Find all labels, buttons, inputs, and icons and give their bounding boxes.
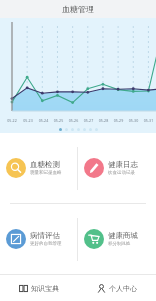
staticText: 05-30 [126, 118, 141, 123]
button[interactable]: 健康日志 [78, 133, 156, 203]
staticText: 更好的自我管理 [30, 241, 62, 247]
staticText: 05-29 [111, 118, 126, 123]
button[interactable]: Profile [78, 275, 156, 301]
staticText: 05-28 [96, 118, 111, 123]
staticText: 05-26 [66, 118, 81, 123]
staticText: 血糖管理 [62, 4, 94, 14]
staticText: 05-25 [51, 118, 66, 123]
staticText: 05-22 [4, 118, 20, 123]
staticText: 测量和记录血糖 [30, 170, 62, 176]
staticText: 积分制兑换 [108, 241, 131, 247]
staticText: 05-24 [36, 118, 51, 123]
button[interactable]: Knowledge [0, 275, 78, 301]
staticText: 个人中心 [109, 284, 137, 293]
button[interactable]: 病情评估 [0, 204, 77, 274]
staticText: 健康日志 [108, 160, 138, 169]
staticText: 血糖检测 [30, 160, 60, 169]
staticText: 05-31 [141, 118, 156, 123]
staticText: 05-27 [81, 118, 96, 123]
staticText: 饮食运动记录 [108, 170, 135, 176]
button[interactable]: 血糖检测 [0, 133, 77, 203]
staticText: 05-23 [20, 118, 36, 123]
staticText: 健康商城 [108, 231, 138, 240]
staticText: 病情评估 [30, 231, 60, 240]
staticText: 知识宝典 [31, 284, 59, 293]
button[interactable]: 健康商城 [78, 204, 156, 274]
